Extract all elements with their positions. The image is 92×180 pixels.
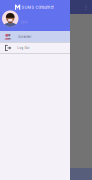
staticText: Log Out bbox=[17, 46, 29, 50]
staticText: SUMS Consumer bbox=[21, 5, 54, 10]
staticText: SUMS Consumer bbox=[22, 5, 55, 10]
staticText: Consumer bbox=[17, 35, 31, 38]
button[interactable]: Consumer bbox=[0, 31, 70, 42]
button[interactable]: Log Out bbox=[0, 42, 70, 54]
staticText: Zain bbox=[21, 20, 28, 24]
